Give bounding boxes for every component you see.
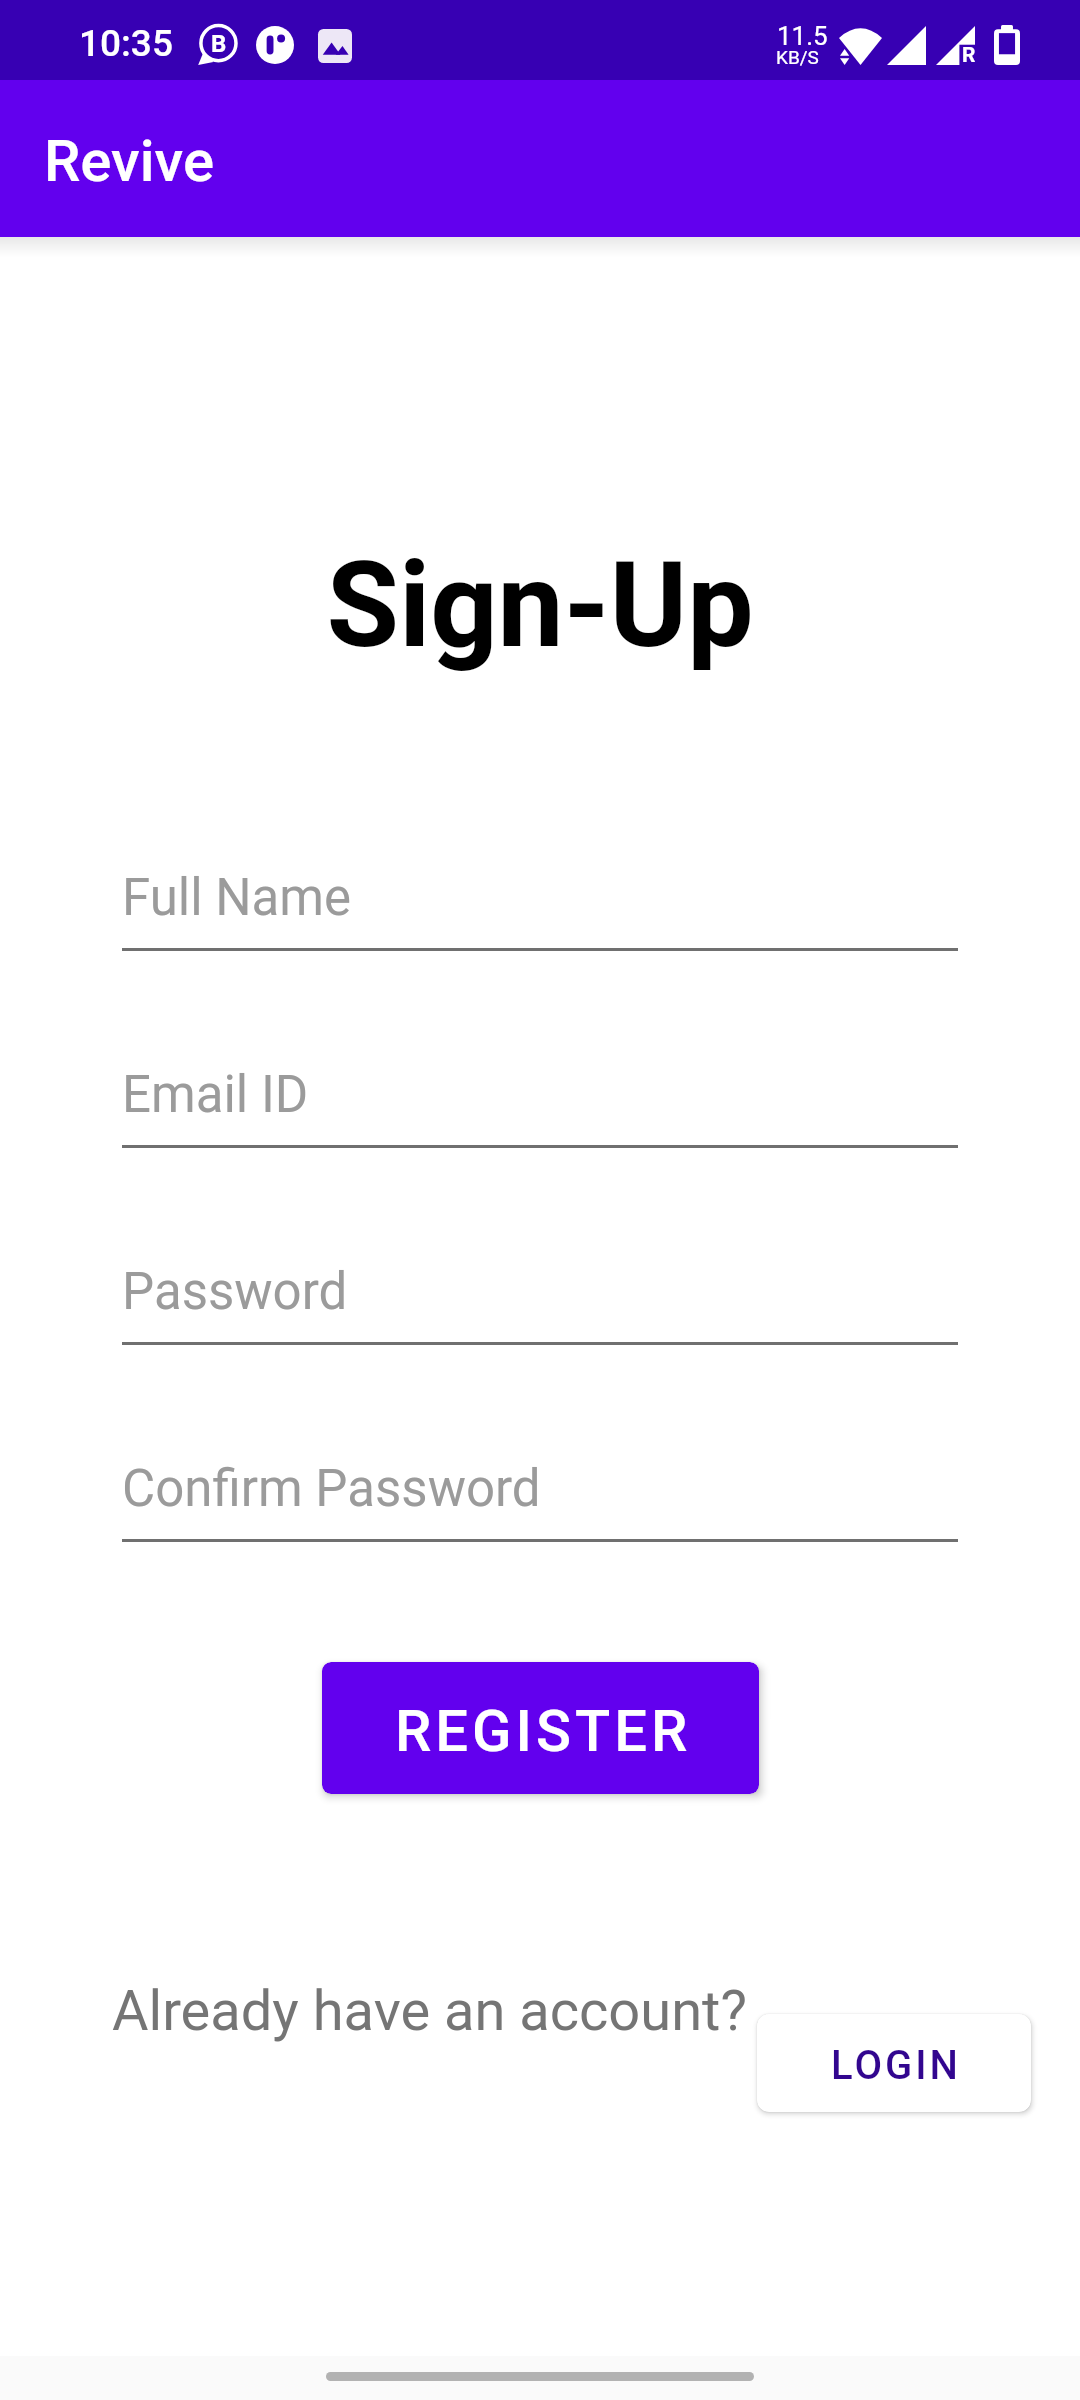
button[interactable]: Email ID: [122, 1014, 958, 1148]
button[interactable]: Password: [122, 1211, 958, 1345]
other: Screenshot notification: [318, 29, 352, 63]
staticText: Email ID: [122, 1065, 309, 1125]
other: Messages notification: [197, 26, 236, 65]
staticText: B: [211, 30, 227, 58]
staticText: 11.5: [777, 21, 828, 51]
button[interactable]: Full Name: [122, 817, 958, 951]
button[interactable]: Confirm Password: [122, 1408, 958, 1542]
button[interactable]: REGISTER: [322, 1662, 759, 1794]
staticText: Already have an account?: [112, 1978, 747, 2044]
staticText: Sign-Up: [0, 537, 1080, 675]
button[interactable]: LOGIN: [757, 2014, 1031, 2112]
staticText: Confirm Password: [122, 1459, 541, 1519]
other: Mobile signal: [887, 26, 926, 65]
staticText: KB/S: [776, 46, 819, 68]
staticText: 10:35: [79, 22, 173, 65]
other: Wi-Fi: [839, 28, 882, 65]
staticText: Revive: [44, 127, 215, 195]
staticText: Full Name: [122, 868, 352, 928]
other: Battery: [994, 25, 1020, 65]
staticText: LOGIN: [831, 2042, 961, 2089]
staticText: REGISTER: [395, 1697, 692, 1765]
staticText: R: [962, 43, 976, 68]
other: Roaming signal: [936, 26, 975, 65]
other: App notification: [256, 26, 294, 64]
staticText: Password: [122, 1262, 348, 1322]
